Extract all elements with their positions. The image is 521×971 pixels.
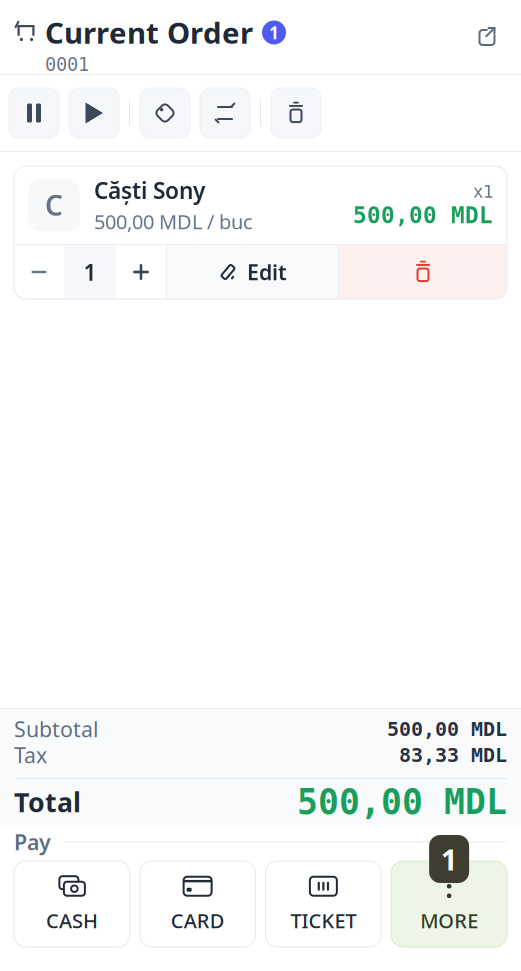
staticText: CASH	[46, 907, 98, 934]
button[interactable]: Remove item	[339, 245, 507, 299]
staticText: Current Order	[45, 13, 253, 52]
button[interactable]: MORE	[391, 861, 507, 947]
staticText: 500,00 MDL	[353, 202, 493, 228]
staticText: Subtotal	[14, 715, 99, 743]
button[interactable]: CASH	[14, 861, 130, 947]
staticText: TICKET	[290, 907, 356, 934]
staticText: 1	[83, 257, 96, 287]
button[interactable]: Apply discount	[140, 88, 190, 138]
button[interactable]: Open order in new window	[470, 19, 504, 53]
staticText: Edit	[247, 258, 287, 286]
button[interactable]: Resume order	[69, 88, 119, 138]
button[interactable]: Edit	[167, 245, 338, 299]
staticText: Tax	[14, 741, 47, 769]
staticText: MORE	[420, 907, 478, 934]
staticText: 1	[441, 839, 458, 878]
staticText: 500,00 MDL	[387, 718, 507, 740]
staticText: 0001	[45, 54, 89, 75]
staticText: x1	[473, 182, 493, 201]
staticText: Căști Sony	[94, 175, 205, 205]
button[interactable]: Increase quantity	[116, 245, 166, 299]
button[interactable]: TICKET	[265, 861, 381, 947]
staticText: CARD	[171, 907, 225, 934]
staticText: 500,00 MDL	[297, 782, 507, 822]
button[interactable]: Hold order	[9, 88, 59, 138]
button[interactable]: Decrease quantity	[14, 245, 64, 299]
button[interactable]: Exchange	[200, 88, 250, 138]
staticText: Total	[14, 784, 81, 820]
staticText: 83,33 MDL	[399, 744, 507, 766]
staticText: 500,00 MDL / buc	[94, 208, 253, 235]
button[interactable]: CARD	[140, 861, 256, 947]
staticText: C	[45, 186, 63, 224]
button[interactable]: Void order	[271, 88, 321, 138]
staticText: 1	[269, 21, 279, 44]
staticText: Pay	[14, 828, 51, 856]
